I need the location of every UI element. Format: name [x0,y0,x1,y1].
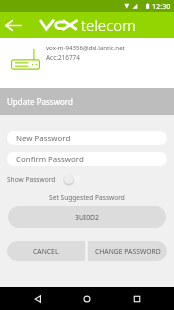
staticText: Confirm Password [16,154,84,165]
button[interactable]: Recents [125,287,149,310]
staticText: Show Password [7,175,56,184]
staticText: 3UI0D2 [75,213,99,222]
staticText: Update Password [7,96,73,107]
staticText: CANCEL [33,247,59,256]
button[interactable]: Back [26,287,50,310]
button[interactable]: Confirm Password [7,152,167,166]
button[interactable]: Show Password toggle [61,172,83,186]
staticText: New Password [16,133,71,144]
staticText: telecom [81,15,136,35]
button[interactable]: CHANGE PASSWORD [88,241,167,261]
staticText: Set Suggested Password [0,193,174,202]
staticText: CHANGE PASSWORD [95,247,161,256]
staticText: Acc:216774 [46,53,80,62]
button[interactable]: Home [75,287,99,310]
button[interactable]: New Password [7,131,167,145]
button[interactable]: Back [0,12,26,38]
staticText: vox-m-94356@dsl.lantic.net [46,43,125,51]
staticText: 12:30 [152,1,171,11]
button[interactable]: CANCEL [7,241,85,261]
button[interactable]: 3UI0D2 [8,206,166,228]
